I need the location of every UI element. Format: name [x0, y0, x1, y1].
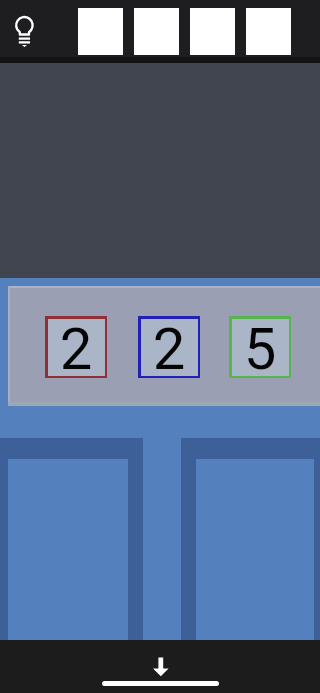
button[interactable]: Key right — [181, 438, 320, 640]
button[interactable] — [229, 316, 291, 378]
button[interactable]: Hide keyboard — [144, 650, 176, 682]
staticText: 5 — [229, 315, 291, 383]
staticText: 2 — [138, 315, 200, 383]
button[interactable]: Key left — [0, 438, 143, 640]
button[interactable] — [138, 316, 200, 378]
button[interactable] — [45, 316, 107, 378]
button[interactable]: Hint — [0, 0, 50, 57]
staticText: 2 — [45, 315, 107, 383]
